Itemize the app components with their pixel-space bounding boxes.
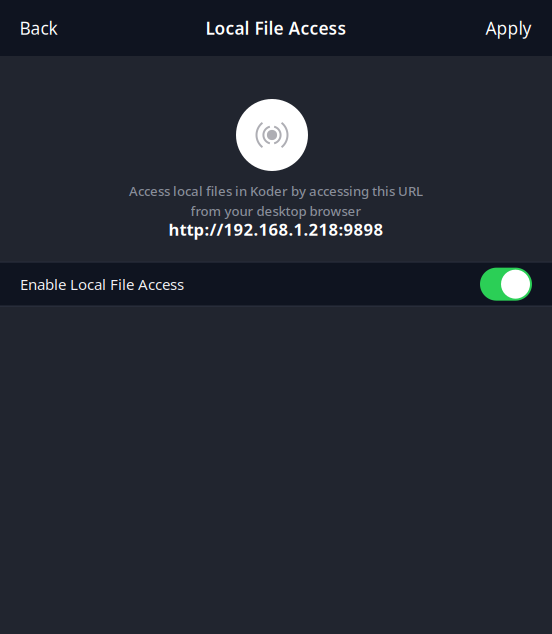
staticText: Apply [485, 16, 531, 40]
staticText: Enable Local File Access [20, 274, 184, 294]
button[interactable]: Enable Local File Access [0, 263, 552, 306]
staticText: Local File Access [205, 16, 346, 40]
staticText: Access local files in Koder by accessing… [129, 182, 423, 200]
button[interactable]: Apply [471, 0, 552, 57]
staticText: from your desktop browser [190, 202, 361, 220]
button[interactable]: Back [0, 0, 71, 57]
staticText: http://192.168.1.218:9898 [168, 218, 383, 241]
staticText: Back [19, 16, 57, 40]
